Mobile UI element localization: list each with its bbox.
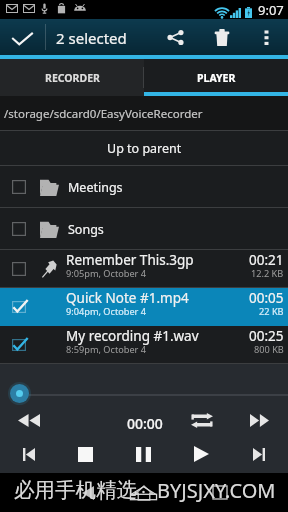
button[interactable]: Meetings [0, 166, 288, 208]
button[interactable]: More options [244, 19, 288, 55]
staticText: Remember This.3gp [66, 251, 194, 269]
staticText: RECORDER [45, 71, 100, 85]
button[interactable]: Recents [191, 473, 249, 512]
button[interactable]: Back [59, 473, 117, 512]
button[interactable]: Repeat [173, 403, 230, 437]
button[interactable]: Previous [0, 435, 57, 473]
staticText: 00:21 [249, 251, 284, 269]
button[interactable]: Pause [114, 435, 172, 473]
staticText: BYJSJXY.COM [157, 477, 276, 504]
staticText: 800 KB [254, 343, 284, 356]
button[interactable]: Quick Note #1.mp4 [0, 288, 288, 326]
button[interactable]: Share [152, 19, 199, 55]
staticText: My recording #1.wav [66, 327, 199, 345]
staticText: Up to parent [107, 140, 182, 157]
staticText: /storage/sdcard0/EasyVoiceRecorder [4, 106, 203, 122]
button[interactable]: Delete [199, 19, 244, 55]
button[interactable]: Fast forward [231, 403, 288, 437]
button[interactable]: Play [172, 435, 230, 473]
button[interactable]: Done [0, 19, 45, 55]
staticText: 00:25 [249, 327, 284, 345]
staticText: 2 selected [56, 28, 127, 48]
staticText: PLAYER [197, 71, 236, 85]
staticText: 8:59pm, October 4 [66, 343, 147, 356]
staticText: 9:07 [258, 1, 284, 19]
staticText: Quick Note #1.mp4 [66, 289, 189, 307]
staticText: 12.2 KB [251, 267, 284, 280]
button[interactable]: Up to parent [0, 131, 288, 166]
button[interactable]: Home [115, 473, 173, 512]
button[interactable]: Next [230, 435, 288, 473]
button[interactable]: Rewind [0, 403, 57, 437]
staticText: 22 KB [259, 305, 284, 318]
staticText: Meetings [68, 179, 123, 196]
button[interactable]: PLAYER [144, 59, 288, 96]
button[interactable]: Remember This.3gp [0, 250, 288, 288]
staticText: 00:00 [127, 414, 163, 433]
staticText: 9:04pm, October 4 [66, 305, 147, 318]
staticText: Songs [68, 221, 104, 238]
staticText: 9:05pm, October 4 [66, 267, 147, 280]
button[interactable]: Stop [57, 435, 114, 473]
button[interactable]: My recording #1.wav [0, 326, 288, 364]
staticText: 00:05 [249, 289, 284, 307]
button[interactable]: RECORDER [0, 59, 144, 96]
staticText: 必用手机精选 [14, 477, 137, 503]
button[interactable]: Songs [0, 208, 288, 250]
